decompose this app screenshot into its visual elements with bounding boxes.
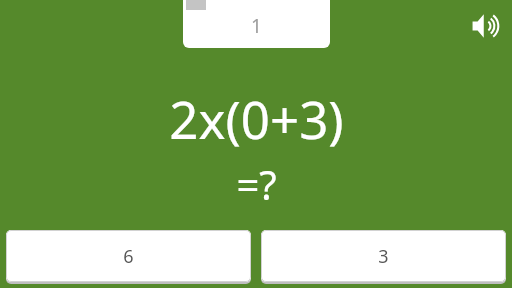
staticText: 2x(0+3) xyxy=(169,84,344,153)
staticText: 6 xyxy=(123,244,134,269)
button[interactable]: 1 xyxy=(183,0,330,48)
staticText: 3 xyxy=(378,244,389,269)
staticText: 1 xyxy=(251,13,262,39)
button[interactable]: 6 xyxy=(6,230,251,282)
staticText: =? xyxy=(236,157,277,211)
button[interactable]: Play sound xyxy=(466,6,506,46)
button[interactable]: 3 xyxy=(261,230,506,282)
